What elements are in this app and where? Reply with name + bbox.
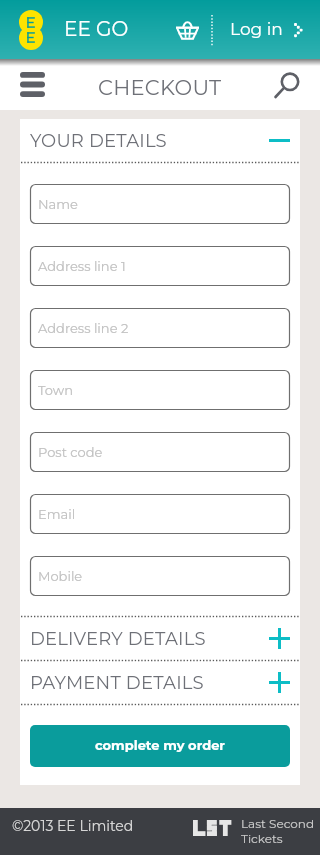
staticText: CHECKOUT xyxy=(98,75,222,101)
button[interactable]: YOUR DETAILS xyxy=(20,119,300,162)
staticText: Name xyxy=(38,196,78,212)
staticText: Address line 2 xyxy=(38,320,129,336)
staticText: Log in xyxy=(230,19,283,40)
staticText: complete my order xyxy=(95,737,225,753)
button[interactable]: Address line 2 xyxy=(30,308,290,348)
staticText: PAYMENT DETAILS xyxy=(30,672,204,694)
staticText: Mobile xyxy=(38,568,83,584)
staticText: Town xyxy=(38,382,73,398)
staticText: YOUR DETAILS xyxy=(30,130,167,152)
button[interactable]: Name xyxy=(30,184,290,224)
button[interactable]: Basket xyxy=(168,11,207,50)
button[interactable]: Log in xyxy=(224,12,309,47)
button[interactable]: Mobile xyxy=(30,556,290,596)
button[interactable]: Email xyxy=(30,494,290,534)
button[interactable]: Search xyxy=(263,62,309,106)
staticText: EE GO xyxy=(64,17,129,41)
staticText: Tickets xyxy=(241,831,283,846)
button[interactable]: DELIVERY DETAILS xyxy=(20,617,300,660)
staticText: Email xyxy=(38,506,76,522)
staticText: Address line 1 xyxy=(38,258,126,274)
staticText: ©2013 EE Limited xyxy=(12,817,134,834)
staticText: Last Second xyxy=(241,816,315,831)
button[interactable]: complete my order xyxy=(30,725,290,767)
button[interactable]: Post code xyxy=(30,432,290,472)
button[interactable]: Menu xyxy=(10,63,54,107)
staticText: DELIVERY DETAILS xyxy=(30,628,206,650)
button[interactable]: Town xyxy=(30,370,290,410)
button[interactable]: PAYMENT DETAILS xyxy=(20,661,300,704)
staticText: Post code xyxy=(38,444,103,460)
button[interactable]: Address line 1 xyxy=(30,246,290,286)
